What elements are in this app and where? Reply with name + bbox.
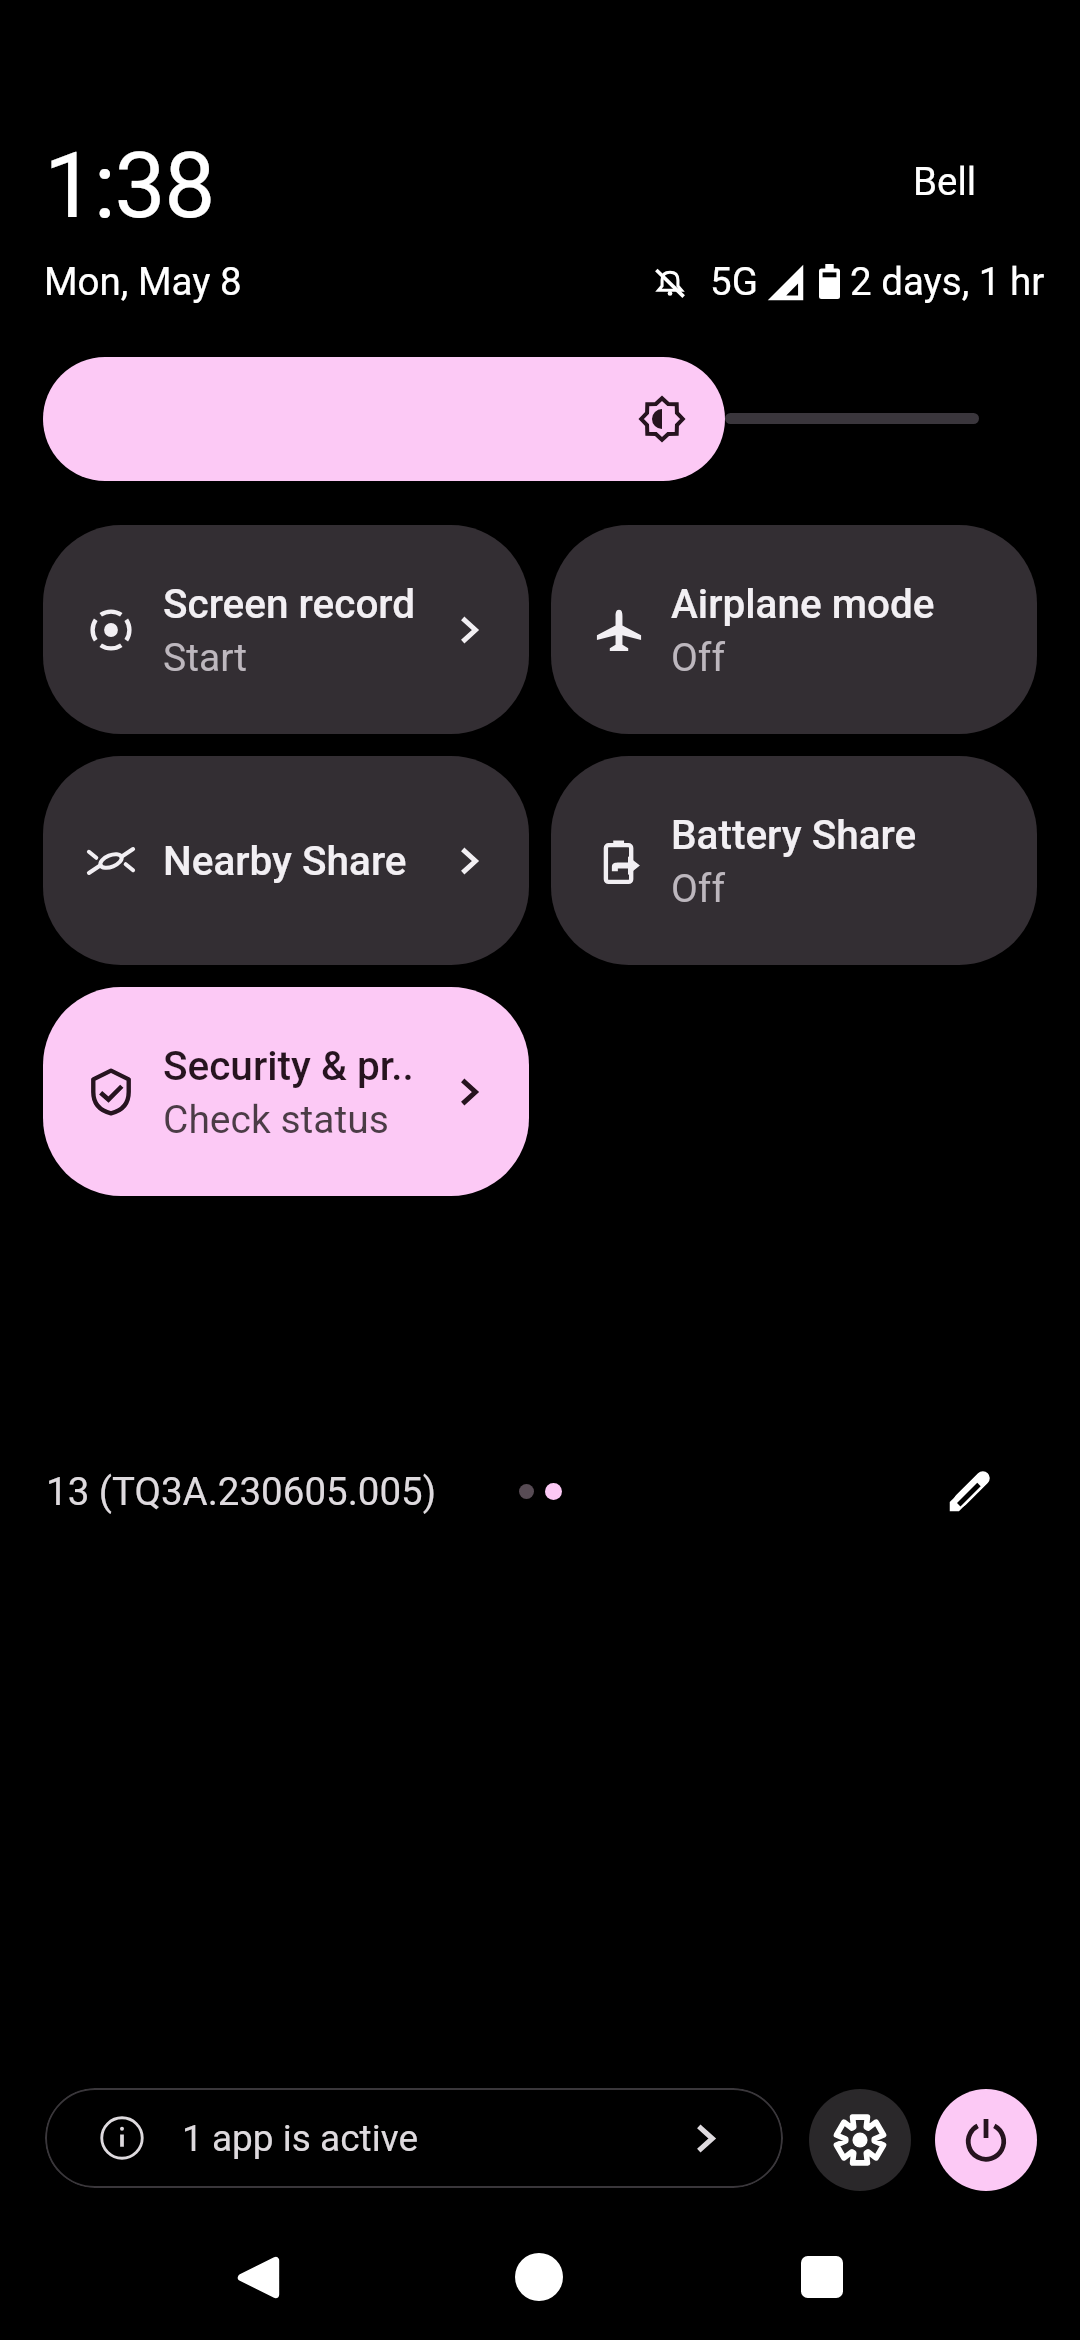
button[interactable]: Battery Share: [551, 756, 1037, 965]
button[interactable]: Airplane mode: [551, 525, 1037, 734]
staticText: Check status: [163, 1097, 389, 1143]
button[interactable]: 1 app is active: [45, 2088, 783, 2188]
staticText: 1:38: [44, 133, 214, 240]
staticText: Airplane mode: [671, 580, 935, 627]
staticText: 2 days, 1 hr: [850, 259, 1045, 304]
button[interactable]: Nearby Share: [43, 756, 529, 965]
staticText: Start: [163, 635, 248, 681]
button[interactable]: Recent apps: [767, 2237, 877, 2317]
staticText: 1 app is active: [182, 2117, 419, 2160]
staticText: 5G: [710, 259, 758, 304]
button[interactable]: Brightness: [43, 357, 725, 481]
staticText: Off: [671, 635, 725, 681]
button[interactable]: Back: [203, 2237, 313, 2317]
staticText: Off: [671, 866, 725, 912]
staticText: Screen record: [163, 580, 416, 627]
button[interactable]: Security & pr..: [43, 987, 529, 1196]
staticText: Bell: [913, 159, 977, 204]
staticText: Security & pr..: [163, 1042, 414, 1089]
button[interactable]: Screen record: [43, 525, 529, 734]
staticText: Nearby Share: [163, 837, 407, 884]
button[interactable]: Home: [484, 2237, 594, 2317]
staticText: Mon, May 8: [44, 259, 242, 304]
staticText: 13 (TQ3A.230605.005): [46, 1469, 437, 1514]
button[interactable]: Edit tiles: [922, 1443, 1018, 1539]
button[interactable]: Settings: [809, 2089, 911, 2191]
button[interactable]: Power: [935, 2089, 1037, 2191]
staticText: Battery Share: [671, 811, 917, 858]
